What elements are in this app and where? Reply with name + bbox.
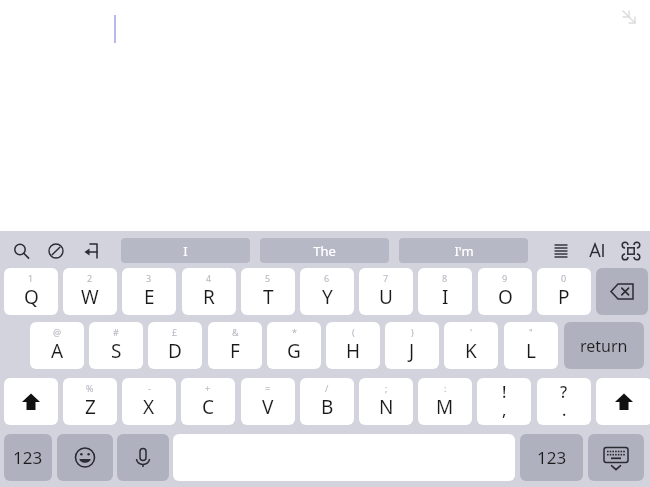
staticText: X (143, 394, 155, 420)
staticText: return (580, 335, 628, 357)
staticText: 123 (13, 446, 43, 469)
button[interactable]: 8 (418, 268, 472, 315)
button[interactable]: # (89, 322, 143, 369)
staticText: ) (411, 326, 414, 338)
staticText: Z (85, 394, 96, 420)
button[interactable]: 0 (537, 268, 591, 315)
button[interactable]: ' (444, 322, 498, 369)
staticText: I (442, 284, 449, 310)
staticText: N (379, 394, 394, 420)
staticText: O (498, 284, 513, 310)
button[interactable]: * (267, 322, 321, 369)
button[interactable]: 6 (300, 268, 354, 315)
staticText: Q (24, 284, 39, 310)
staticText: 123 (537, 446, 567, 469)
staticText: H (346, 338, 361, 364)
button[interactable]: I (121, 238, 250, 263)
button[interactable]: ) (385, 322, 439, 369)
staticText: 3 (146, 272, 152, 284)
button[interactable]: + (181, 378, 235, 425)
staticText: E (144, 284, 155, 310)
staticText: I (183, 242, 188, 260)
staticText: A (51, 338, 64, 364)
staticText: 4 (206, 272, 212, 284)
staticText: 2 (87, 272, 93, 284)
staticText: + (205, 382, 211, 394)
button[interactable]: 1 (4, 268, 58, 315)
button[interactable]: ; (359, 378, 413, 425)
button[interactable]: I'm (399, 238, 528, 263)
button[interactable]: Collapse (620, 8, 638, 26)
staticText: C (202, 394, 215, 420)
button[interactable]: 2 (63, 268, 117, 315)
button[interactable]: Shortcuts (617, 238, 645, 264)
staticText: K (465, 338, 477, 364)
button[interactable]: : (418, 378, 472, 425)
staticText: I'm (454, 242, 474, 260)
button[interactable]: & (208, 322, 262, 369)
staticText: : (444, 382, 447, 394)
button[interactable]: Shift (4, 378, 58, 425)
button[interactable]: 5 (241, 268, 295, 315)
staticText: T (263, 284, 274, 310)
staticText: £ (172, 326, 178, 338)
staticText: / (325, 382, 329, 394)
staticText: The (313, 242, 336, 260)
staticText: & (232, 326, 239, 338)
staticText: P (558, 284, 570, 310)
staticText: * (292, 326, 297, 338)
button[interactable]: ? (537, 378, 591, 425)
staticText: 0 (561, 272, 567, 284)
staticText: 5 (265, 272, 271, 284)
staticText: F (230, 338, 240, 364)
staticText: ( (352, 326, 355, 338)
staticText: L (526, 338, 536, 364)
button[interactable]: ! (477, 378, 531, 425)
button[interactable]: Undo (41, 238, 71, 264)
button[interactable]: 3 (122, 268, 176, 315)
button[interactable]: The (260, 238, 389, 263)
staticText: 9 (502, 272, 508, 284)
staticText: , (502, 399, 507, 421)
staticText: W (81, 284, 99, 310)
staticText: V (262, 394, 274, 420)
button[interactable]: return (564, 322, 644, 369)
button[interactable]: 4 (182, 268, 236, 315)
staticText: S (111, 338, 122, 364)
staticText: ! (502, 381, 507, 403)
button[interactable]: @ (30, 322, 84, 369)
button[interactable]: Formatting list (547, 238, 575, 264)
button[interactable]: " (504, 322, 558, 369)
button[interactable]: 123 (520, 434, 583, 481)
button[interactable]: = (241, 378, 295, 425)
button[interactable]: Search (6, 238, 36, 264)
button[interactable]: - (122, 378, 176, 425)
button[interactable]: Hide keyboard (588, 434, 644, 481)
staticText: ' (470, 326, 473, 338)
button[interactable]: 9 (478, 268, 532, 315)
staticText: B (321, 394, 334, 420)
staticText: = (265, 382, 271, 394)
button[interactable]: £ (148, 322, 202, 369)
staticText: 8 (442, 272, 448, 284)
staticText: - (148, 382, 151, 394)
staticText: " (529, 326, 533, 338)
button[interactable]: 7 (359, 268, 413, 315)
button[interactable]: Dictate (117, 434, 169, 481)
staticText: Y (322, 284, 333, 310)
staticText: . (562, 399, 567, 421)
button[interactable]: Redo (76, 238, 106, 264)
button[interactable]: / (300, 378, 354, 425)
button[interactable]: 123 (4, 434, 52, 481)
staticText: 1 (28, 272, 34, 284)
button[interactable]: ( (326, 322, 380, 369)
button[interactable]: Emoji (57, 434, 113, 481)
button[interactable]: Text format (582, 238, 610, 264)
button[interactable]: % (63, 378, 117, 425)
staticText: 7 (383, 272, 389, 284)
staticText: ; (385, 382, 388, 394)
staticText: @ (53, 326, 62, 338)
button[interactable]: Backspace (596, 268, 648, 315)
button[interactable]: Shift (596, 378, 650, 425)
